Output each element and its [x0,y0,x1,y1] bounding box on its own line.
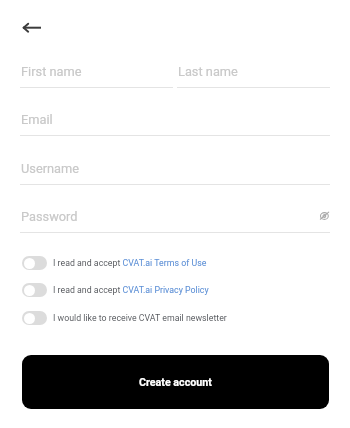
staticText: I read and accept CVAT.ai Terms of Use [53,258,207,268]
button[interactable]: Email [20,105,330,136]
staticText: Last name [178,64,238,79]
button[interactable]: First name [20,57,173,88]
button[interactable]: I read and accept CVAT.ai Privacy Policy [22,279,322,301]
button[interactable]: Create account [22,355,329,409]
staticText: Password [21,209,78,224]
staticText: Create account [139,376,212,389]
button[interactable]: I read and accept CVAT.ai Terms of Use [22,252,322,274]
staticText: Email [21,112,53,127]
button[interactable]: Username [20,154,330,185]
staticText: I would like to receive CVAT email newsl… [53,313,227,323]
staticText: I read and accept CVAT.ai Privacy Policy [53,285,209,295]
button[interactable]: Show password [310,205,330,225]
button[interactable]: Last name [177,57,330,88]
button[interactable]: Back [11,15,51,41]
button[interactable]: I would like to receive CVAT email newsl… [22,307,322,329]
staticText: First name [21,64,82,79]
staticText: Username [21,161,80,176]
button[interactable]: Password [20,202,330,233]
